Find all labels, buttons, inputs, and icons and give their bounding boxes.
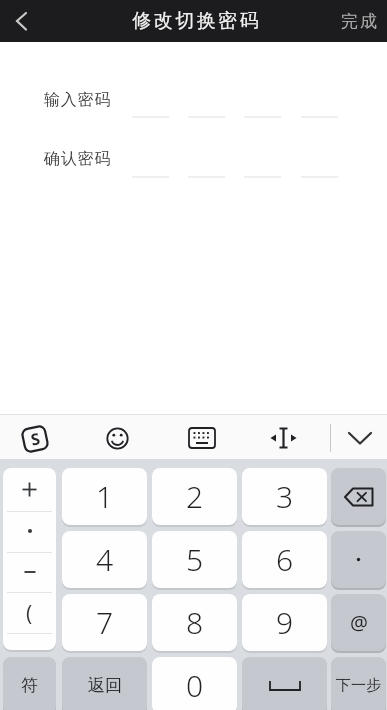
button[interactable]: 3 (242, 468, 327, 525)
staticText: 6 (276, 539, 294, 580)
staticText: 3 (276, 476, 294, 517)
button[interactable]: 6 (242, 531, 327, 588)
button[interactable] (4, 4, 38, 38)
staticText: 0 (186, 665, 204, 706)
button[interactable] (347, 426, 373, 450)
staticText: 输入密码 (44, 90, 112, 110)
button[interactable] (268, 426, 299, 450)
staticText: 符 (21, 675, 38, 696)
staticText: 9 (276, 602, 294, 643)
button[interactable] (242, 657, 327, 710)
button[interactable] (331, 468, 386, 525)
button[interactable]: S (20, 424, 50, 454)
staticText: 完成 (340, 11, 378, 32)
staticText: 返回 (88, 675, 122, 696)
button[interactable]: 2 (152, 468, 237, 525)
staticText: 2 (186, 476, 204, 517)
staticText: 7 (96, 602, 114, 643)
staticText: 4 (96, 539, 114, 580)
button[interactable] (188, 426, 216, 450)
staticText: 5 (186, 539, 204, 580)
button[interactable]: 8 (152, 594, 237, 651)
button[interactable]: 4 (62, 531, 147, 588)
button[interactable]: 5 (152, 531, 237, 588)
staticText: 下一步 (336, 676, 381, 695)
button[interactable]: 9 (242, 594, 327, 651)
staticText: 8 (186, 602, 204, 643)
button[interactable]: 下一步 (331, 657, 386, 710)
staticText: S (29, 427, 42, 451)
staticText: ( (26, 599, 33, 625)
button[interactable]: @ (331, 594, 386, 651)
button[interactable]: 完成 (334, 10, 384, 32)
button[interactable]: 0 (152, 657, 237, 710)
staticText: @ (350, 609, 368, 636)
button[interactable]: 7 (62, 594, 147, 651)
button[interactable] (331, 531, 386, 588)
staticText: 修改切换密码 (131, 9, 260, 33)
button[interactable]: 符 (3, 657, 56, 710)
button[interactable] (3, 468, 56, 650)
button[interactable] (103, 424, 132, 453)
staticText: 1 (96, 476, 114, 517)
staticText: 确认密码 (44, 149, 112, 169)
button[interactable]: 1 (62, 468, 147, 525)
button[interactable]: 返回 (62, 657, 147, 710)
